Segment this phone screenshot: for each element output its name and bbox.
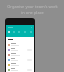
button[interactable] — [6, 67, 34, 72]
button[interactable] — [6, 62, 34, 67]
staticText: Organise your team's work — [7, 4, 58, 9]
button[interactable]: Tab 2 — [11, 30, 16, 33]
button[interactable]: Tab 5 — [28, 30, 34, 33]
button[interactable] — [6, 47, 34, 52]
button[interactable] — [6, 52, 34, 57]
button[interactable] — [6, 57, 34, 62]
button[interactable]: Tab 4 — [22, 30, 28, 33]
button[interactable]: Tab 1 — [6, 30, 11, 33]
staticText: in one place — [21, 10, 44, 15]
button[interactable] — [6, 42, 34, 47]
button[interactable]: Tab 3 — [16, 30, 22, 33]
